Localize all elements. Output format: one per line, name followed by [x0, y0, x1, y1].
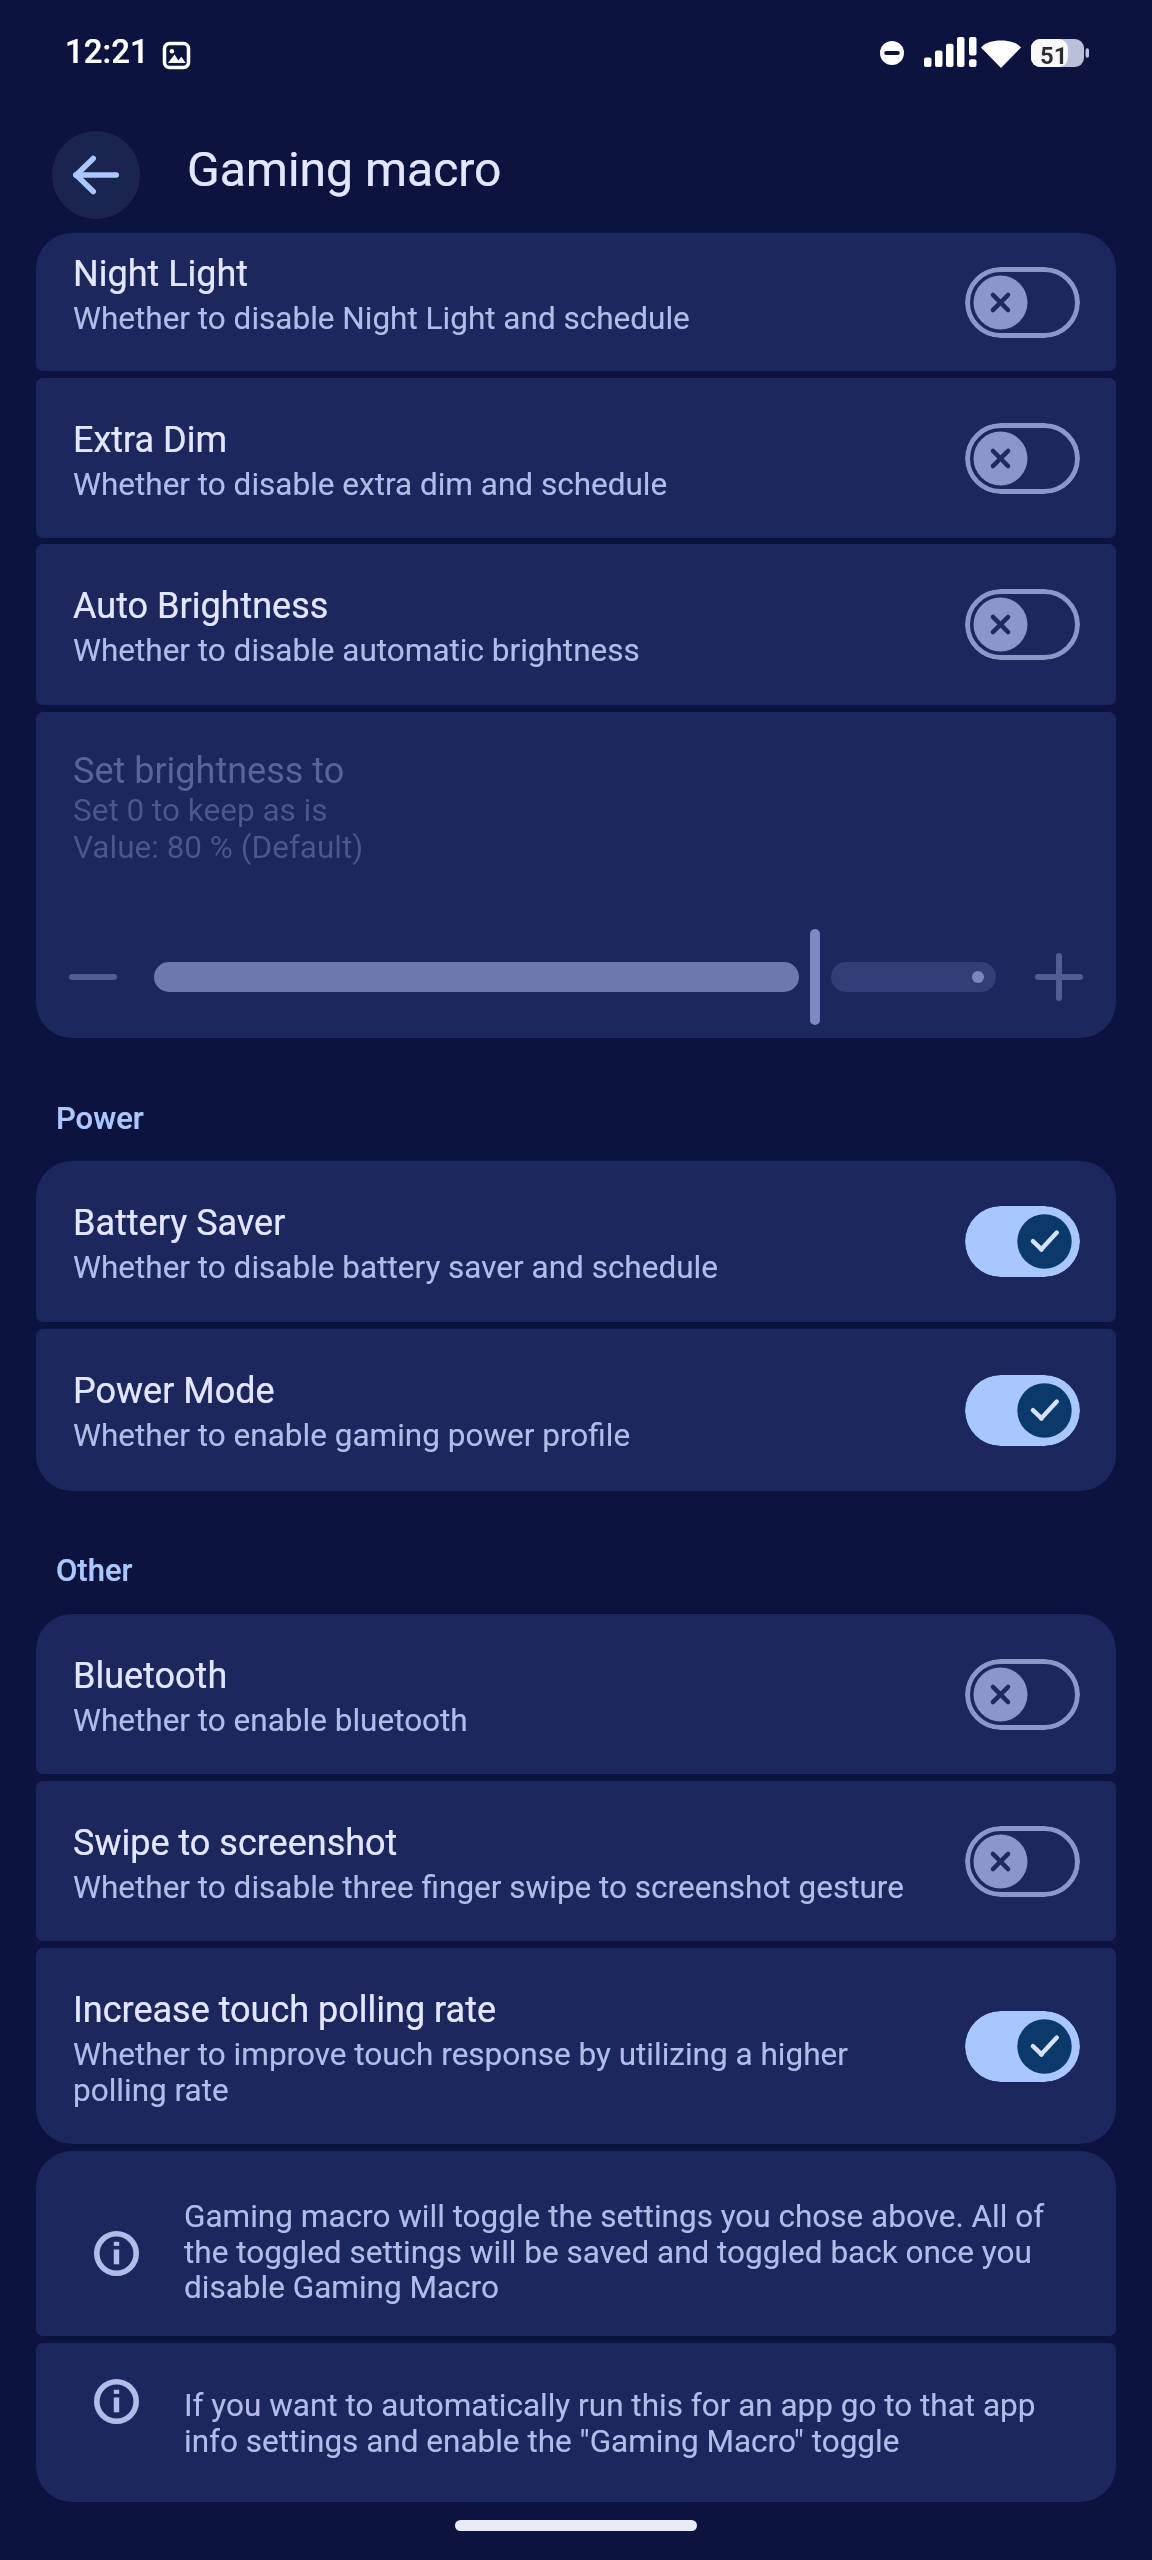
- staticText: Whether to enable gaming power profile: [73, 1417, 631, 1454]
- button[interactable]: Enabled toggle: [965, 1206, 1080, 1277]
- staticText: Whether to disable automatic brightness: [73, 632, 640, 669]
- button[interactable]: Increase touch polling rate: [36, 1948, 1116, 2144]
- staticText: 51: [1040, 42, 1068, 70]
- staticText: Bluetooth: [73, 1655, 228, 1697]
- staticText: Whether to disable three finger swipe to…: [73, 1869, 904, 1906]
- staticText: Whether to disable Night Light and sched…: [73, 300, 690, 337]
- staticText: Other: [56, 1552, 133, 1588]
- staticText: Whether to enable bluetooth: [73, 1702, 468, 1739]
- button[interactable]: Enabled toggle: [965, 1375, 1080, 1446]
- staticText: Night Light: [73, 253, 249, 295]
- button[interactable]: Disabled toggle: [965, 1826, 1080, 1897]
- button[interactable]: Disabled toggle: [965, 1659, 1080, 1730]
- staticText: Value: 80 % (Default): [73, 829, 364, 866]
- staticText: Set 0 to keep as is: [73, 792, 328, 829]
- button[interactable]: Gaming macro will toggle the settings yo…: [36, 2151, 1116, 2336]
- button[interactable]: Night Light: [36, 233, 1116, 371]
- staticText: Power Mode: [73, 1370, 275, 1412]
- button[interactable]: Power Mode: [36, 1329, 1116, 1491]
- button[interactable]: Disabled toggle: [965, 423, 1080, 494]
- button[interactable]: Disabled toggle: [965, 589, 1080, 660]
- button[interactable]: If you want to automatically run this fo…: [36, 2343, 1116, 2502]
- staticText: Set brightness to: [73, 750, 345, 792]
- button[interactable]: Enabled toggle: [965, 2011, 1080, 2082]
- staticText: Whether to disable extra dim and schedul…: [73, 466, 668, 503]
- staticText: Increase touch polling rate: [73, 1989, 497, 2031]
- staticText: Extra Dim: [73, 419, 228, 461]
- staticText: Whether to disable battery saver and sch…: [73, 1249, 718, 1286]
- staticText: 12:21: [65, 32, 149, 71]
- button[interactable]: Disabled toggle: [965, 267, 1080, 338]
- staticText: Auto Brightness: [73, 585, 329, 627]
- button[interactable]: Swipe to screenshot: [36, 1781, 1116, 1941]
- staticText: Gaming macro: [187, 141, 502, 197]
- staticText: Whether to improve touch response by uti…: [73, 2036, 918, 2108]
- button[interactable]: Extra Dim: [36, 378, 1116, 538]
- button[interactable]: Set brightness to: [36, 712, 1116, 1038]
- button[interactable]: Auto Brightness: [36, 544, 1116, 705]
- staticText: Swipe to screenshot: [73, 1822, 398, 1864]
- button[interactable]: Bluetooth: [36, 1614, 1116, 1774]
- button[interactable]: Back: [52, 131, 140, 219]
- staticText: Battery Saver: [73, 1202, 286, 1244]
- staticText: If you want to automatically run this fo…: [184, 2387, 1064, 2460]
- staticText: Gaming macro will toggle the settings yo…: [184, 2198, 1064, 2306]
- button[interactable]: Battery Saver: [36, 1161, 1116, 1322]
- staticText: Power: [56, 1100, 144, 1136]
